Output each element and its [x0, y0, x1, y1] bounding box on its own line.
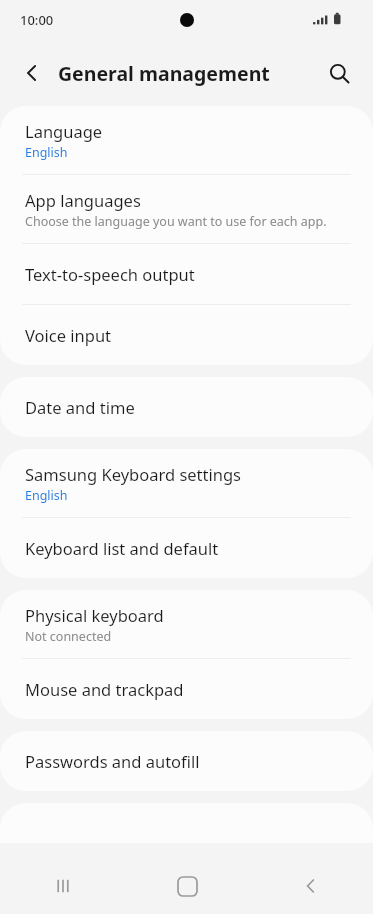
staticText: Text-to-speech output	[25, 263, 195, 285]
staticText: 10:00	[20, 11, 54, 29]
staticText: Physical keyboard	[25, 604, 164, 626]
button[interactable]: Mouse and trackpad	[0, 659, 373, 719]
button[interactable]: Search	[317, 51, 361, 95]
staticText: Voice input	[25, 324, 112, 346]
staticText: Date and time	[25, 396, 135, 418]
staticText: Passwords and autofill	[25, 750, 200, 772]
button[interactable]: App languages	[0, 175, 373, 244]
staticText: English	[25, 487, 68, 504]
button[interactable]: Language	[0, 106, 373, 175]
button[interactable]: Back	[249, 858, 373, 914]
button[interactable]: Physical keyboard	[0, 590, 373, 659]
staticText: Mouse and trackpad	[25, 678, 184, 700]
staticText: App languages	[25, 189, 141, 211]
button[interactable]: Samsung Keyboard settings	[0, 449, 373, 518]
staticText: Language	[25, 120, 103, 142]
button[interactable]: Recents	[0, 858, 125, 914]
button[interactable]: Text-to-speech output	[0, 244, 373, 305]
staticText: Not connected	[25, 628, 112, 645]
staticText: Keyboard list and default	[25, 537, 219, 559]
staticText: Samsung Keyboard settings	[25, 463, 242, 485]
button[interactable]: Passwords and autofill	[0, 731, 373, 791]
button[interactable]: Back	[10, 51, 54, 95]
staticText: Choose the language you want to use for …	[25, 213, 327, 230]
button[interactable]: Keyboard list and default	[0, 518, 373, 578]
button[interactable]: Date and time	[0, 377, 373, 437]
button[interactable]: Voice input	[0, 305, 373, 365]
staticText: General management	[58, 60, 270, 87]
button[interactable]: Home	[125, 858, 249, 914]
staticText: English	[25, 144, 68, 161]
